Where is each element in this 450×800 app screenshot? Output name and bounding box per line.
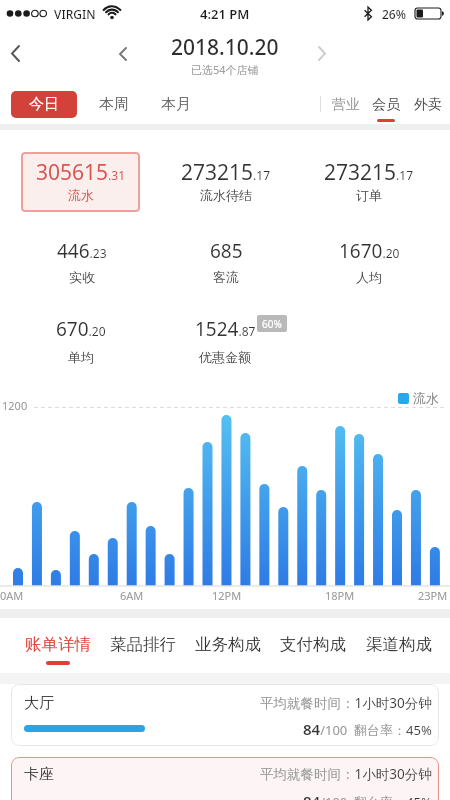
- staticText: 6AM: [120, 588, 144, 603]
- staticText: 优惠金额: [199, 349, 251, 365]
- staticText: 实收: [69, 269, 95, 285]
- staticText: 18PM: [325, 588, 355, 603]
- staticText: 卡座: [24, 765, 54, 783]
- staticText: 685: [210, 238, 243, 262]
- button[interactable]: 菜品排行: [103, 630, 183, 658]
- staticText: 业务构成: [195, 634, 261, 655]
- staticText: 84/100 翻台率：45%: [303, 719, 432, 736]
- button[interactable]: 支付构成: [273, 630, 353, 658]
- staticText: 本周: [99, 95, 129, 114]
- staticText: 1524.87: [195, 316, 256, 340]
- staticText: 273215.17: [181, 158, 271, 184]
- staticText: 会员: [372, 96, 400, 114]
- button[interactable]: 会员: [371, 91, 401, 118]
- staticText: 平均就餐时间：1小时30分钟: [260, 765, 432, 781]
- staticText: 大厅: [24, 694, 54, 712]
- button[interactable]: [119, 47, 127, 61]
- button[interactable]: [11, 45, 20, 62]
- staticText: 支付构成: [280, 634, 346, 655]
- staticText: 84/100 翻台率：45%: [303, 791, 432, 800]
- staticText: 订单: [356, 187, 382, 203]
- button[interactable]: 账单详情: [18, 630, 98, 658]
- button[interactable]: 渠道构成: [359, 630, 439, 658]
- staticText: 4:21 PM: [200, 5, 250, 23]
- staticText: 60%: [262, 317, 282, 331]
- staticText: 305615.31: [36, 158, 126, 184]
- staticText: 外卖: [414, 96, 442, 114]
- staticText: 客流: [213, 269, 239, 285]
- button[interactable]: 营业: [331, 91, 361, 118]
- staticText: 菜品排行: [110, 634, 176, 655]
- staticText: 人均: [356, 269, 382, 285]
- staticText: 1200: [2, 398, 28, 412]
- staticText: 流水待结: [200, 187, 252, 203]
- staticText: 营业: [332, 96, 360, 114]
- staticText: 平均就餐时间：1小时30分钟: [260, 694, 432, 710]
- staticText: 账单详情: [25, 634, 91, 655]
- staticText: 273215.17: [324, 158, 414, 184]
- staticText: 流水: [413, 390, 439, 406]
- button[interactable]: 本月: [154, 91, 198, 118]
- staticText: 已选54个店铺: [191, 62, 259, 77]
- button[interactable]: 外卖: [413, 91, 443, 118]
- staticText: 446.23: [57, 238, 107, 262]
- staticText: 2018.10.20: [171, 33, 279, 59]
- button[interactable]: 本周: [92, 91, 136, 118]
- staticText: 流水: [68, 187, 94, 203]
- staticText: 今日: [29, 95, 59, 114]
- staticText: 670.20: [56, 316, 106, 340]
- button[interactable]: [11, 757, 439, 800]
- button[interactable]: [318, 46, 326, 61]
- button[interactable]: 今日: [11, 91, 77, 118]
- staticText: 26%: [382, 6, 406, 22]
- staticText: 1670.20: [339, 238, 400, 262]
- button[interactable]: [11, 684, 439, 746]
- staticText: 12PM: [212, 588, 242, 603]
- staticText: 单均: [68, 349, 94, 365]
- staticText: 23PM: [418, 588, 448, 603]
- staticText: 0AM: [0, 588, 24, 603]
- button[interactable]: [21, 152, 140, 212]
- button[interactable]: 业务构成: [188, 630, 268, 658]
- staticText: 本月: [161, 95, 191, 114]
- staticText: 渠道构成: [366, 634, 432, 655]
- staticText: VIRGIN: [54, 6, 96, 22]
